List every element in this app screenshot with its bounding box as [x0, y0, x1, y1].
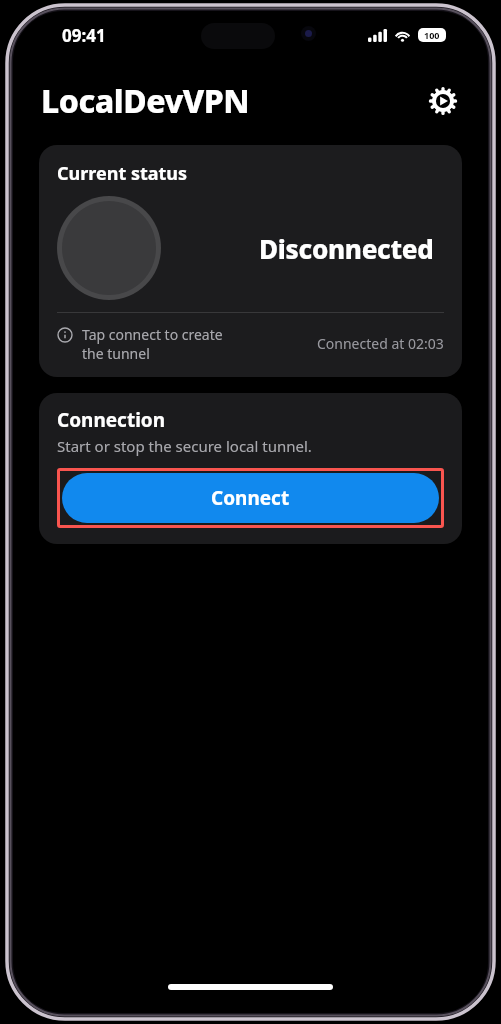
staticText: 09:41 [62, 24, 106, 47]
staticText: Disconnected [259, 231, 434, 266]
staticText: LocalDevVPN [41, 79, 250, 123]
staticText: 100 [424, 29, 440, 41]
button[interactable]: Connect [62, 473, 439, 523]
staticText: Connected at 02:03 [317, 334, 444, 353]
staticText: Connect [211, 485, 290, 511]
staticText: Tap connect to create the tunnel [82, 325, 232, 363]
staticText: Current status [57, 161, 188, 186]
button[interactable]: Current status [39, 145, 462, 377]
button[interactable]: Settings [424, 82, 462, 120]
staticText: Start or stop the secure local tunnel. [57, 436, 312, 456]
staticText: Connection [57, 407, 166, 433]
